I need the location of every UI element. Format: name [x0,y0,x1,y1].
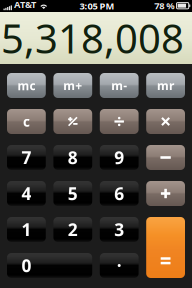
button[interactable]: 9 [100,145,139,170]
button[interactable]: 2 [53,217,92,242]
staticText: 3:05 PM [79,0,114,12]
staticText: 0 [21,254,31,277]
staticText: m+ [63,77,82,93]
button[interactable]: Plus [146,181,185,206]
staticText: 9 [114,146,124,169]
staticText: mc [17,77,35,93]
button[interactable]: Divide [100,109,139,134]
staticText: 4 [21,182,31,205]
button[interactable]: c [7,109,46,134]
button[interactable]: m+ [53,73,92,98]
staticText: 3 [114,218,124,241]
button[interactable]: Decimal point [100,253,139,278]
button[interactable]: 6 [100,181,139,206]
button[interactable]: 4 [7,181,46,206]
staticText: 6 [114,182,124,205]
button[interactable]: 8 [53,145,92,170]
button[interactable]: Multiply [146,109,185,134]
button[interactable]: mc [7,73,46,98]
staticText: mr [157,77,174,93]
staticText: AT&T [14,0,36,11]
staticText: 8 [68,146,78,169]
staticText: 7 [21,146,31,169]
button[interactable]: 3 [100,217,139,242]
button[interactable]: 1 [7,217,46,242]
button[interactable]: m- [100,73,139,98]
staticText: 78 % [154,0,174,12]
button[interactable]: 7 [7,145,46,170]
staticText: m- [111,77,127,93]
button[interactable]: Plus minus [53,109,92,134]
button[interactable]: mr [146,73,185,98]
button[interactable]: Equals [146,217,185,278]
button[interactable]: Minus [146,145,185,170]
staticText: 5,318,008 [1,11,184,64]
staticText: 1 [21,218,31,241]
staticText: 2 [68,218,78,241]
button[interactable]: 5 [53,181,92,206]
button[interactable]: 0 [7,253,92,278]
staticText: c [23,113,30,130]
staticText: 5 [68,182,78,205]
